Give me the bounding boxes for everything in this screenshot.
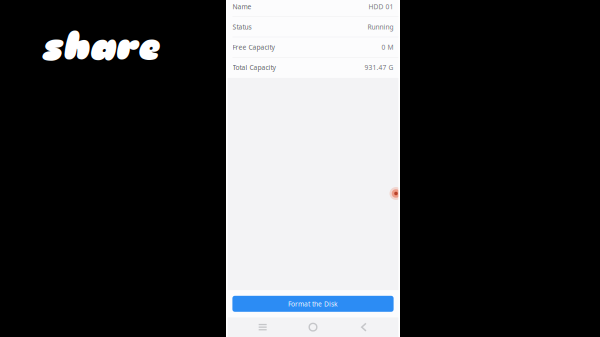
staticText: 931.47 G — [364, 63, 393, 72]
staticText: Status — [232, 22, 251, 31]
staticText: Format the Disk — [288, 299, 338, 308]
staticText: 0 M — [381, 43, 393, 52]
button[interactable]: Recent apps — [237, 319, 288, 335]
button[interactable]: Home — [288, 319, 338, 335]
button[interactable]: Back — [338, 319, 388, 335]
staticText: Running — [367, 22, 393, 31]
staticText: Total Capacity — [232, 63, 275, 72]
staticText: HDD 01 — [368, 2, 393, 11]
staticText: Name — [232, 2, 251, 11]
staticText: Free Capacity — [232, 43, 274, 52]
button[interactable]: Format the Disk — [232, 296, 394, 312]
staticText: share — [40, 24, 158, 70]
